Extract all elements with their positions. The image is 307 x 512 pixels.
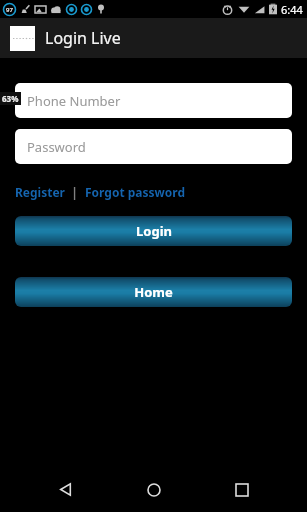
button[interactable]: Recent apps	[218, 467, 266, 512]
staticText: 6:44	[281, 2, 303, 17]
staticText: Forgot password	[85, 184, 186, 200]
staticText: Phone Number	[27, 92, 121, 110]
button[interactable]: Phone Number	[15, 83, 292, 118]
button[interactable]: Home	[15, 277, 292, 307]
staticText: 97	[6, 6, 13, 14]
button[interactable]: Forgot password	[85, 184, 186, 200]
button[interactable]: Home	[130, 467, 178, 512]
button[interactable]: Register	[15, 184, 65, 200]
staticText: 63%	[2, 93, 19, 104]
staticText: Login	[136, 222, 172, 240]
button[interactable]: Back	[41, 467, 89, 512]
button[interactable]: Password	[15, 129, 292, 164]
staticText: Login Live	[45, 27, 121, 49]
staticText: Home	[134, 283, 173, 301]
staticText: Password	[27, 138, 86, 156]
button[interactable]: Login	[15, 216, 292, 246]
staticText: Register	[15, 184, 65, 200]
staticText: |	[65, 184, 85, 200]
